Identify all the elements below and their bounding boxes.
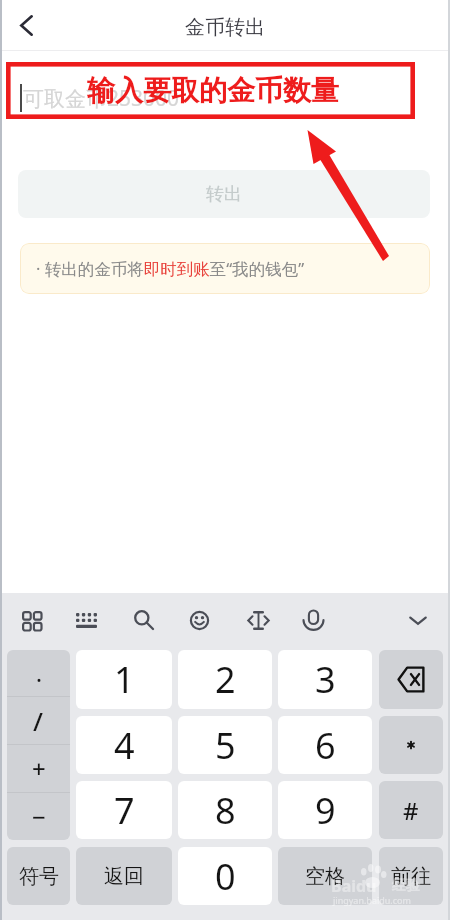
- staticText: +: [32, 752, 46, 785]
- staticText: 前往: [391, 864, 431, 889]
- staticText: 5: [215, 721, 236, 770]
- button[interactable]: 返回: [76, 847, 172, 905]
- button[interactable]: /: [7, 697, 70, 744]
- staticText: 符号: [19, 864, 59, 889]
- button[interactable]: 2: [178, 650, 272, 709]
- button[interactable]: 可取金币253000: [20, 84, 180, 112]
- button[interactable]: 空格: [278, 847, 372, 905]
- staticText: 转出: [206, 183, 242, 206]
- staticText: 1: [114, 655, 135, 704]
- button[interactable]: 符号: [7, 847, 70, 905]
- staticText: 0: [215, 852, 236, 901]
- staticText: Baidu: [331, 875, 377, 897]
- button[interactable]: Backspace: [379, 650, 443, 709]
- button[interactable]: 5: [178, 716, 272, 774]
- button[interactable]: Keyboard: [70, 604, 102, 636]
- button[interactable]: Emoji: [183, 604, 215, 636]
- staticText: 可取金币253000: [23, 84, 180, 112]
- staticText: jingyan.baidu.com: [333, 894, 411, 906]
- staticText: −: [32, 800, 46, 833]
- staticText: 返回: [104, 864, 144, 889]
- staticText: 8: [215, 786, 236, 835]
- button[interactable]: 0: [178, 847, 272, 905]
- staticText: .: [36, 658, 42, 688]
- button[interactable]: .: [7, 650, 70, 696]
- button[interactable]: −: [7, 793, 70, 840]
- button[interactable]: +: [7, 745, 70, 792]
- staticText: 2: [215, 655, 236, 704]
- button[interactable]: 4: [76, 716, 172, 774]
- button[interactable]: 6: [278, 716, 372, 774]
- staticText: 6: [315, 721, 336, 770]
- button[interactable]: #: [379, 781, 443, 839]
- button[interactable]: Cursor: [242, 604, 274, 636]
- button[interactable]: 8: [178, 781, 272, 839]
- button[interactable]: 转出: [18, 170, 430, 218]
- button[interactable]: 3: [278, 650, 372, 709]
- staticText: /: [33, 703, 44, 738]
- staticText: 经验: [392, 877, 420, 895]
- button[interactable]: Voice: [297, 604, 329, 636]
- button[interactable]: Hide keyboard: [402, 604, 434, 636]
- staticText: 金币转出: [185, 15, 265, 40]
- button[interactable]: Search: [128, 604, 160, 636]
- staticText: #: [403, 794, 419, 827]
- staticText: 7: [114, 786, 135, 835]
- button[interactable]: 前往: [379, 847, 443, 905]
- staticText: 4: [114, 721, 135, 770]
- staticText: 3: [315, 655, 336, 704]
- staticText: 输入要取的金币数量: [87, 73, 339, 108]
- staticText: · 转出的金币将即时到账至“我的钱包”: [36, 257, 305, 280]
- button[interactable]: 9: [278, 781, 372, 839]
- button[interactable]: 7: [76, 781, 172, 839]
- button[interactable]: Back: [4, 3, 49, 48]
- staticText: 9: [315, 786, 336, 835]
- button[interactable]: *: [379, 716, 443, 774]
- staticText: 空格: [305, 864, 345, 889]
- button[interactable]: Panels: [15, 604, 47, 636]
- button[interactable]: 1: [76, 650, 172, 709]
